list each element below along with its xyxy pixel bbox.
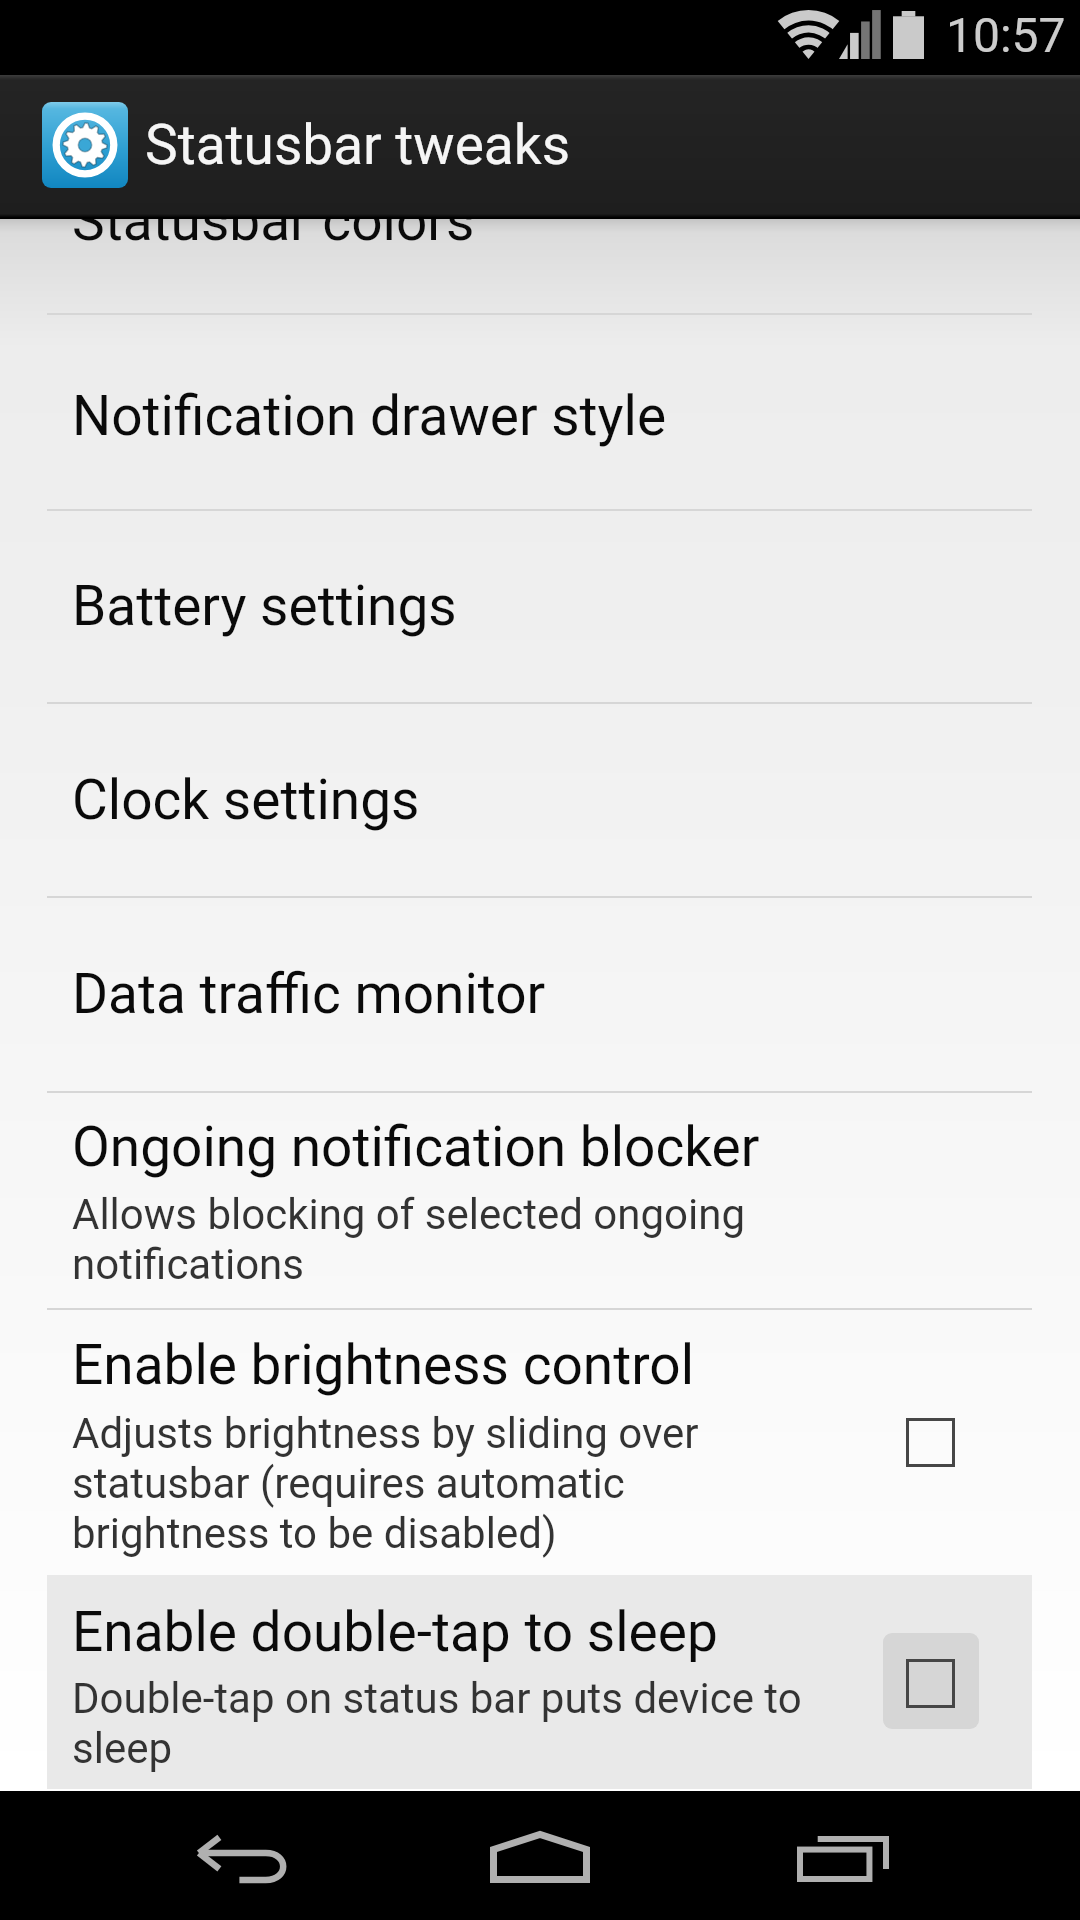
button[interactable] — [0, 314, 1080, 510]
staticText: Data traffic monitor — [72, 962, 546, 1026]
button[interactable] — [0, 510, 1080, 703]
staticText: Clock settings — [72, 768, 420, 832]
button[interactable] — [0, 1575, 1080, 1791]
staticText: Battery settings — [72, 574, 457, 638]
button[interactable] — [0, 1092, 1080, 1309]
staticText: Allows blocking of selected ongoing noti… — [72, 1190, 746, 1289]
staticText: Double-tap on status bar puts device to … — [72, 1674, 802, 1773]
button[interactable] — [0, 1309, 1080, 1575]
staticText: Adjusts brightness by sliding over statu… — [72, 1409, 699, 1558]
staticText: Statusbar tweaks — [145, 113, 571, 177]
button[interactable]: Recents — [715, 1791, 975, 1920]
staticText: Notification drawer style — [72, 384, 667, 448]
button[interactable]: Home — [410, 1791, 670, 1920]
staticText: Enable double-tap to sleep — [72, 1600, 718, 1664]
button[interactable] — [0, 897, 1080, 1092]
staticText: Enable brightness control — [72, 1333, 694, 1397]
staticText: 10:57 — [946, 7, 1066, 63]
staticText: Statusbar colors — [72, 189, 475, 253]
button[interactable]: Back — [108, 1791, 368, 1920]
button[interactable] — [0, 214, 1080, 314]
button[interactable] — [0, 703, 1080, 897]
button[interactable]: Checkbox — [906, 1659, 955, 1708]
button[interactable]: Checkbox — [906, 1418, 955, 1467]
staticText: Ongoing notification blocker — [72, 1115, 760, 1179]
